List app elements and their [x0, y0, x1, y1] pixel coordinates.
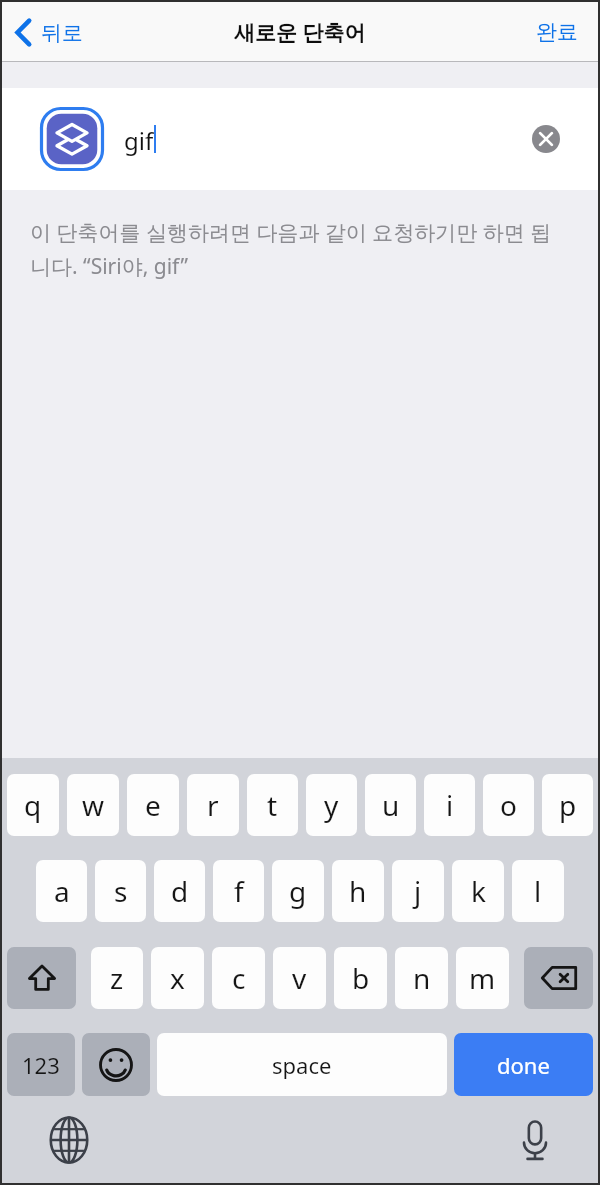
staticText: 새로운 단축어	[234, 18, 366, 47]
staticText: w	[82, 786, 105, 824]
staticText: z	[110, 959, 124, 997]
button[interactable]: 완료	[516, 9, 598, 55]
staticText: l	[534, 872, 542, 910]
button[interactable]: space	[157, 1033, 447, 1096]
staticText: o	[500, 786, 517, 824]
button[interactable]: 123	[7, 1033, 75, 1096]
staticText: d	[171, 872, 189, 910]
button[interactable]: o	[483, 774, 534, 836]
button[interactable]: Backspace	[524, 947, 593, 1009]
staticText: j	[414, 872, 422, 910]
button[interactable]: Change keyboard	[43, 1114, 95, 1166]
staticText: h	[349, 872, 367, 910]
staticText: t	[267, 786, 278, 824]
button[interactable]: t	[247, 774, 298, 836]
staticText: gif	[124, 124, 154, 157]
staticText: f	[234, 872, 244, 910]
button[interactable]: q	[7, 774, 59, 836]
button[interactable]: 뒤로	[2, 11, 97, 54]
staticText: k	[471, 872, 486, 910]
staticText: 뒤로	[41, 20, 83, 46]
button[interactable]: y	[306, 774, 357, 836]
button[interactable]: w	[67, 774, 119, 836]
button[interactable]: d	[154, 860, 205, 922]
button[interactable]: k	[452, 860, 504, 922]
button[interactable]: n	[395, 947, 448, 1009]
button[interactable]: done	[454, 1033, 593, 1096]
button[interactable]: x	[151, 947, 204, 1009]
staticText: g	[289, 872, 307, 910]
button[interactable]: i	[424, 774, 475, 836]
staticText: y	[324, 786, 339, 824]
staticText: x	[170, 959, 185, 997]
staticText: c	[232, 959, 246, 997]
button[interactable]: z	[91, 947, 143, 1009]
staticText: n	[413, 959, 431, 997]
button[interactable]: f	[213, 860, 264, 922]
staticText: u	[382, 786, 400, 824]
staticText: space	[272, 1050, 332, 1080]
staticText: s	[114, 872, 128, 910]
button[interactable]: h	[332, 860, 384, 922]
button[interactable]: j	[392, 860, 444, 922]
button[interactable]: Dictation	[509, 1114, 561, 1166]
button[interactable]: m	[456, 947, 509, 1009]
button[interactable]: p	[542, 774, 593, 836]
staticText: done	[497, 1050, 550, 1080]
staticText: m	[469, 959, 496, 997]
button[interactable]: Clear text	[532, 125, 560, 153]
staticText: 완료	[536, 19, 578, 45]
button[interactable]: g	[272, 860, 324, 922]
button[interactable]: s	[95, 860, 146, 922]
button[interactable]: Emoji	[82, 1033, 150, 1096]
button[interactable]: e	[127, 774, 179, 836]
staticText: 이 단축어를 실행하려면 다음과 같이 요청하기만 하면 됩니다. “Siri야…	[30, 218, 572, 280]
staticText: q	[24, 786, 42, 824]
staticText: 123	[22, 1050, 60, 1080]
staticText: b	[352, 959, 370, 997]
button[interactable]: b	[334, 947, 387, 1009]
button[interactable]: v	[273, 947, 326, 1009]
button[interactable]: u	[365, 774, 416, 836]
button[interactable]: l	[512, 860, 564, 922]
staticText: r	[207, 786, 219, 824]
staticText: a	[54, 872, 70, 910]
button[interactable]: c	[212, 947, 265, 1009]
button[interactable]: a	[36, 860, 87, 922]
button[interactable]: r	[187, 774, 239, 836]
staticText: p	[559, 786, 577, 824]
staticText: e	[145, 786, 161, 824]
staticText: i	[446, 786, 454, 824]
button[interactable]: Shift	[7, 947, 76, 1009]
staticText: v	[292, 959, 307, 997]
